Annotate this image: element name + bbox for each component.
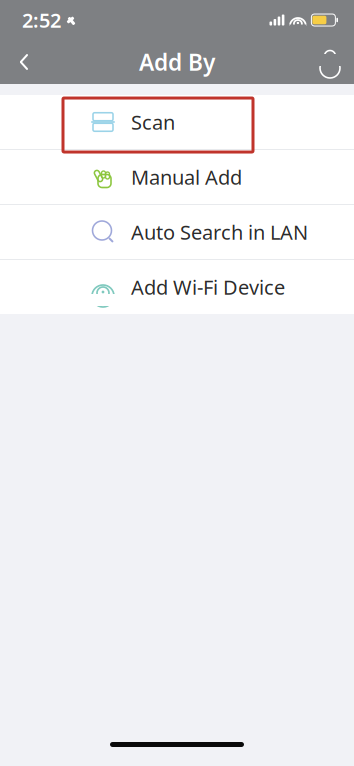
staticText: Add By bbox=[139, 47, 215, 77]
staticText: Scan bbox=[131, 109, 175, 135]
staticText: Add Wi-Fi Device bbox=[131, 274, 285, 300]
button[interactable]: Account bbox=[306, 40, 354, 84]
button[interactable]: Auto Search in LAN bbox=[0, 205, 354, 259]
staticText: 2:52 bbox=[22, 7, 61, 33]
staticText: Manual Add bbox=[131, 164, 242, 190]
button[interactable]: Scan bbox=[0, 95, 354, 149]
button[interactable]: Manual Add bbox=[0, 150, 354, 204]
staticText: Auto Search in LAN bbox=[131, 219, 308, 245]
button[interactable]: Add Wi-Fi Device bbox=[0, 260, 354, 314]
button[interactable]: Back bbox=[0, 40, 48, 84]
